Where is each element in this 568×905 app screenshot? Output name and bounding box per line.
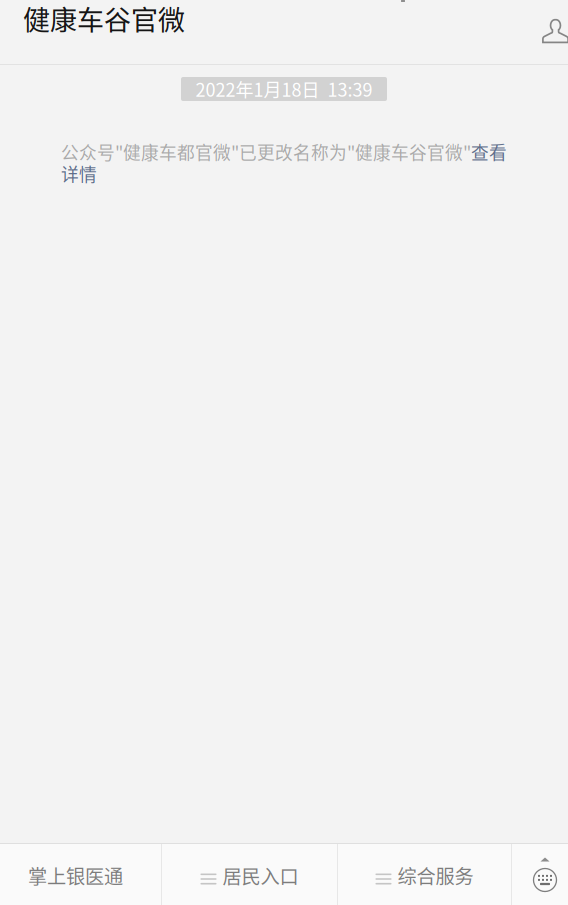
staticText: 公众号"健康车都官微"已更改名称为"健康车谷官微"查看详情 [61, 139, 507, 186]
button[interactable]: 综合服务 [338, 843, 511, 905]
staticText: 健康车谷官微 [23, 0, 185, 38]
staticText: 综合服务 [397, 862, 473, 889]
button[interactable]: 掌上银医通 [0, 843, 161, 905]
staticText: 居民入口 [222, 862, 298, 889]
button[interactable]: Switch to keyboard [512, 843, 568, 905]
button[interactable]: 居民入口 [162, 843, 337, 905]
staticText: 掌上银医通 [28, 862, 123, 889]
button[interactable]: Contact profile [542, 20, 568, 45]
staticText: 2022年1月18日 13:39 [195, 76, 372, 102]
